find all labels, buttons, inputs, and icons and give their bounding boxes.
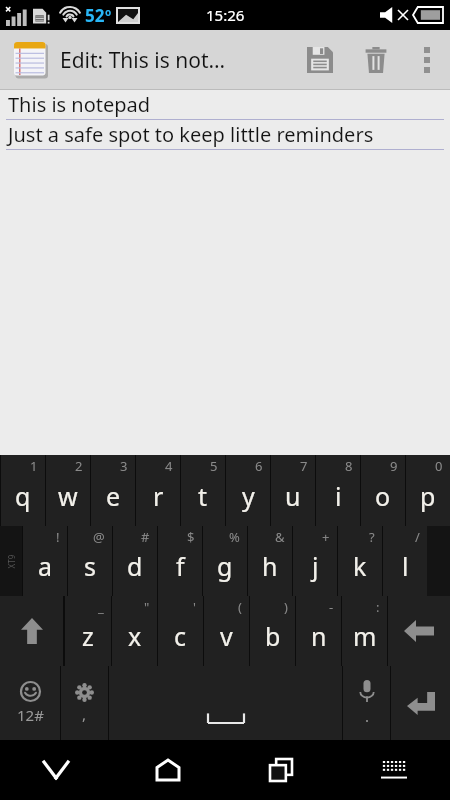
staticText: z	[82, 619, 94, 653]
button[interactable]: 7	[271, 455, 315, 526]
button[interactable]: _	[65, 596, 111, 666]
staticText: f	[176, 549, 185, 583]
button[interactable]: Change keyboard	[337, 740, 450, 800]
staticText: +	[322, 528, 330, 546]
staticText: y	[242, 479, 255, 513]
staticText: :	[376, 598, 380, 616]
staticText: This is notepad	[8, 91, 151, 118]
staticText: p	[420, 479, 436, 513]
staticText: 0	[435, 457, 443, 475]
button[interactable]: Edit: This is not…	[12, 38, 228, 82]
staticText: e	[106, 479, 121, 513]
staticText: o	[375, 479, 391, 513]
button[interactable]: Backspace	[388, 596, 450, 666]
staticText: "	[144, 598, 150, 616]
staticText: %	[229, 528, 240, 546]
button[interactable]: Symbols	[0, 666, 60, 740]
button[interactable]: Delete	[348, 32, 404, 88]
button[interactable]: Save	[292, 32, 348, 88]
button[interactable]: &	[248, 526, 292, 596]
staticText: 5	[210, 457, 218, 475]
button[interactable]: +	[293, 526, 337, 596]
button[interactable]: !	[23, 526, 67, 596]
staticText: 3	[120, 457, 128, 475]
button[interactable]: Voice input	[343, 666, 390, 740]
staticText: t	[198, 479, 208, 513]
button[interactable]: 2	[46, 455, 90, 526]
staticText: w	[58, 479, 78, 513]
staticText: 9	[390, 457, 398, 475]
button[interactable]: 0	[406, 455, 450, 526]
button[interactable]: ?	[338, 526, 382, 596]
staticText: Edit: This is not…	[60, 46, 226, 75]
staticText: ?	[369, 528, 375, 546]
button[interactable]: Shift	[0, 596, 63, 666]
staticText: /	[415, 528, 420, 546]
staticText: @	[93, 528, 105, 546]
button[interactable]: '	[158, 596, 203, 666]
staticText: 52	[85, 4, 105, 27]
staticText: !	[56, 528, 60, 546]
button[interactable]: $	[158, 526, 202, 596]
button[interactable]: Enter	[391, 666, 450, 740]
staticText: u	[285, 479, 301, 513]
button[interactable]: %	[203, 526, 247, 596]
button[interactable]: Settings	[61, 666, 108, 740]
button[interactable]: /	[383, 526, 427, 596]
staticText: )	[284, 598, 288, 616]
staticText: #	[141, 528, 150, 546]
staticText: r	[153, 479, 164, 513]
staticText: x	[128, 619, 142, 653]
button[interactable]: 9	[361, 455, 405, 526]
button[interactable]: "	[112, 596, 157, 666]
staticText: k	[353, 549, 367, 583]
button[interactable]: More options	[404, 37, 450, 83]
staticText: h	[262, 549, 278, 583]
button[interactable]: @	[68, 526, 112, 596]
staticText: 12#	[17, 705, 44, 725]
button[interactable]: 8	[316, 455, 360, 526]
button[interactable]: )	[250, 596, 295, 666]
staticText: $	[187, 528, 195, 546]
button[interactable]: Space	[109, 666, 342, 740]
staticText: m	[353, 619, 377, 653]
staticText: l	[402, 549, 409, 583]
staticText: XT9	[5, 554, 16, 568]
staticText: n	[311, 619, 327, 653]
staticText: ,	[82, 704, 87, 724]
staticText: j	[312, 549, 319, 583]
staticText: b	[265, 619, 281, 653]
button[interactable]: -	[296, 596, 341, 666]
staticText: 8	[345, 457, 353, 475]
button[interactable]: 1	[1, 455, 45, 526]
staticText: c	[174, 619, 187, 653]
staticText: d	[127, 549, 143, 583]
staticText: _	[98, 598, 104, 616]
button[interactable]: Home	[112, 740, 224, 800]
button[interactable]: 3	[91, 455, 135, 526]
staticText: (	[238, 598, 242, 616]
staticText: g	[217, 549, 233, 583]
button[interactable]: (	[204, 596, 249, 666]
staticText: '	[193, 598, 196, 616]
button[interactable]: :	[342, 596, 387, 666]
button[interactable]: #	[113, 526, 157, 596]
staticText: &	[275, 528, 285, 546]
staticText: a	[38, 549, 53, 583]
button[interactable]: 4	[136, 455, 180, 526]
button[interactable]: 6	[226, 455, 270, 526]
staticText: 6	[255, 457, 263, 475]
button[interactable]: Hide keyboard	[0, 740, 112, 800]
staticText: -	[329, 598, 334, 616]
staticText: 4	[165, 457, 173, 475]
button[interactable]: 5	[181, 455, 225, 526]
staticText: v	[220, 619, 233, 653]
staticText: 1	[30, 457, 38, 475]
button[interactable]: Recent apps	[224, 740, 337, 800]
button[interactable]: This is notepad	[0, 90, 450, 120]
staticText: o	[105, 5, 112, 19]
staticText: Just a safe spot to keep little reminder…	[8, 121, 374, 148]
staticText: q	[15, 479, 31, 513]
staticText: 7	[300, 457, 308, 475]
button[interactable]: Just a safe spot to keep little reminder…	[0, 120, 450, 150]
